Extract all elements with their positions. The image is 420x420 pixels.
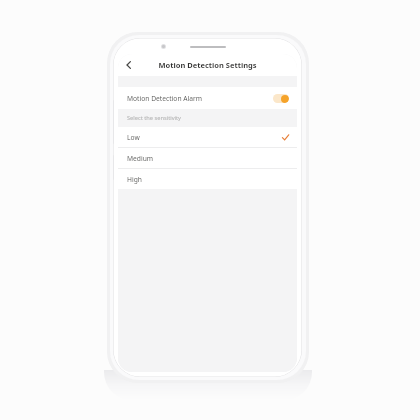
button[interactable]: High — [118, 169, 297, 189]
button[interactable]: Low — [118, 127, 297, 147]
staticText: Motion Detection Settings — [158, 60, 257, 70]
button[interactable]: Back — [118, 54, 139, 76]
staticText: Low — [127, 133, 140, 142]
staticText: Motion Detection Alarm — [127, 94, 203, 103]
staticText: High — [127, 175, 142, 184]
staticText: Select the sensitivity — [127, 114, 181, 122]
button[interactable]: Medium — [118, 148, 297, 168]
staticText: Medium — [127, 154, 154, 163]
button[interactable]: Motion Detection Alarm — [118, 87, 297, 109]
